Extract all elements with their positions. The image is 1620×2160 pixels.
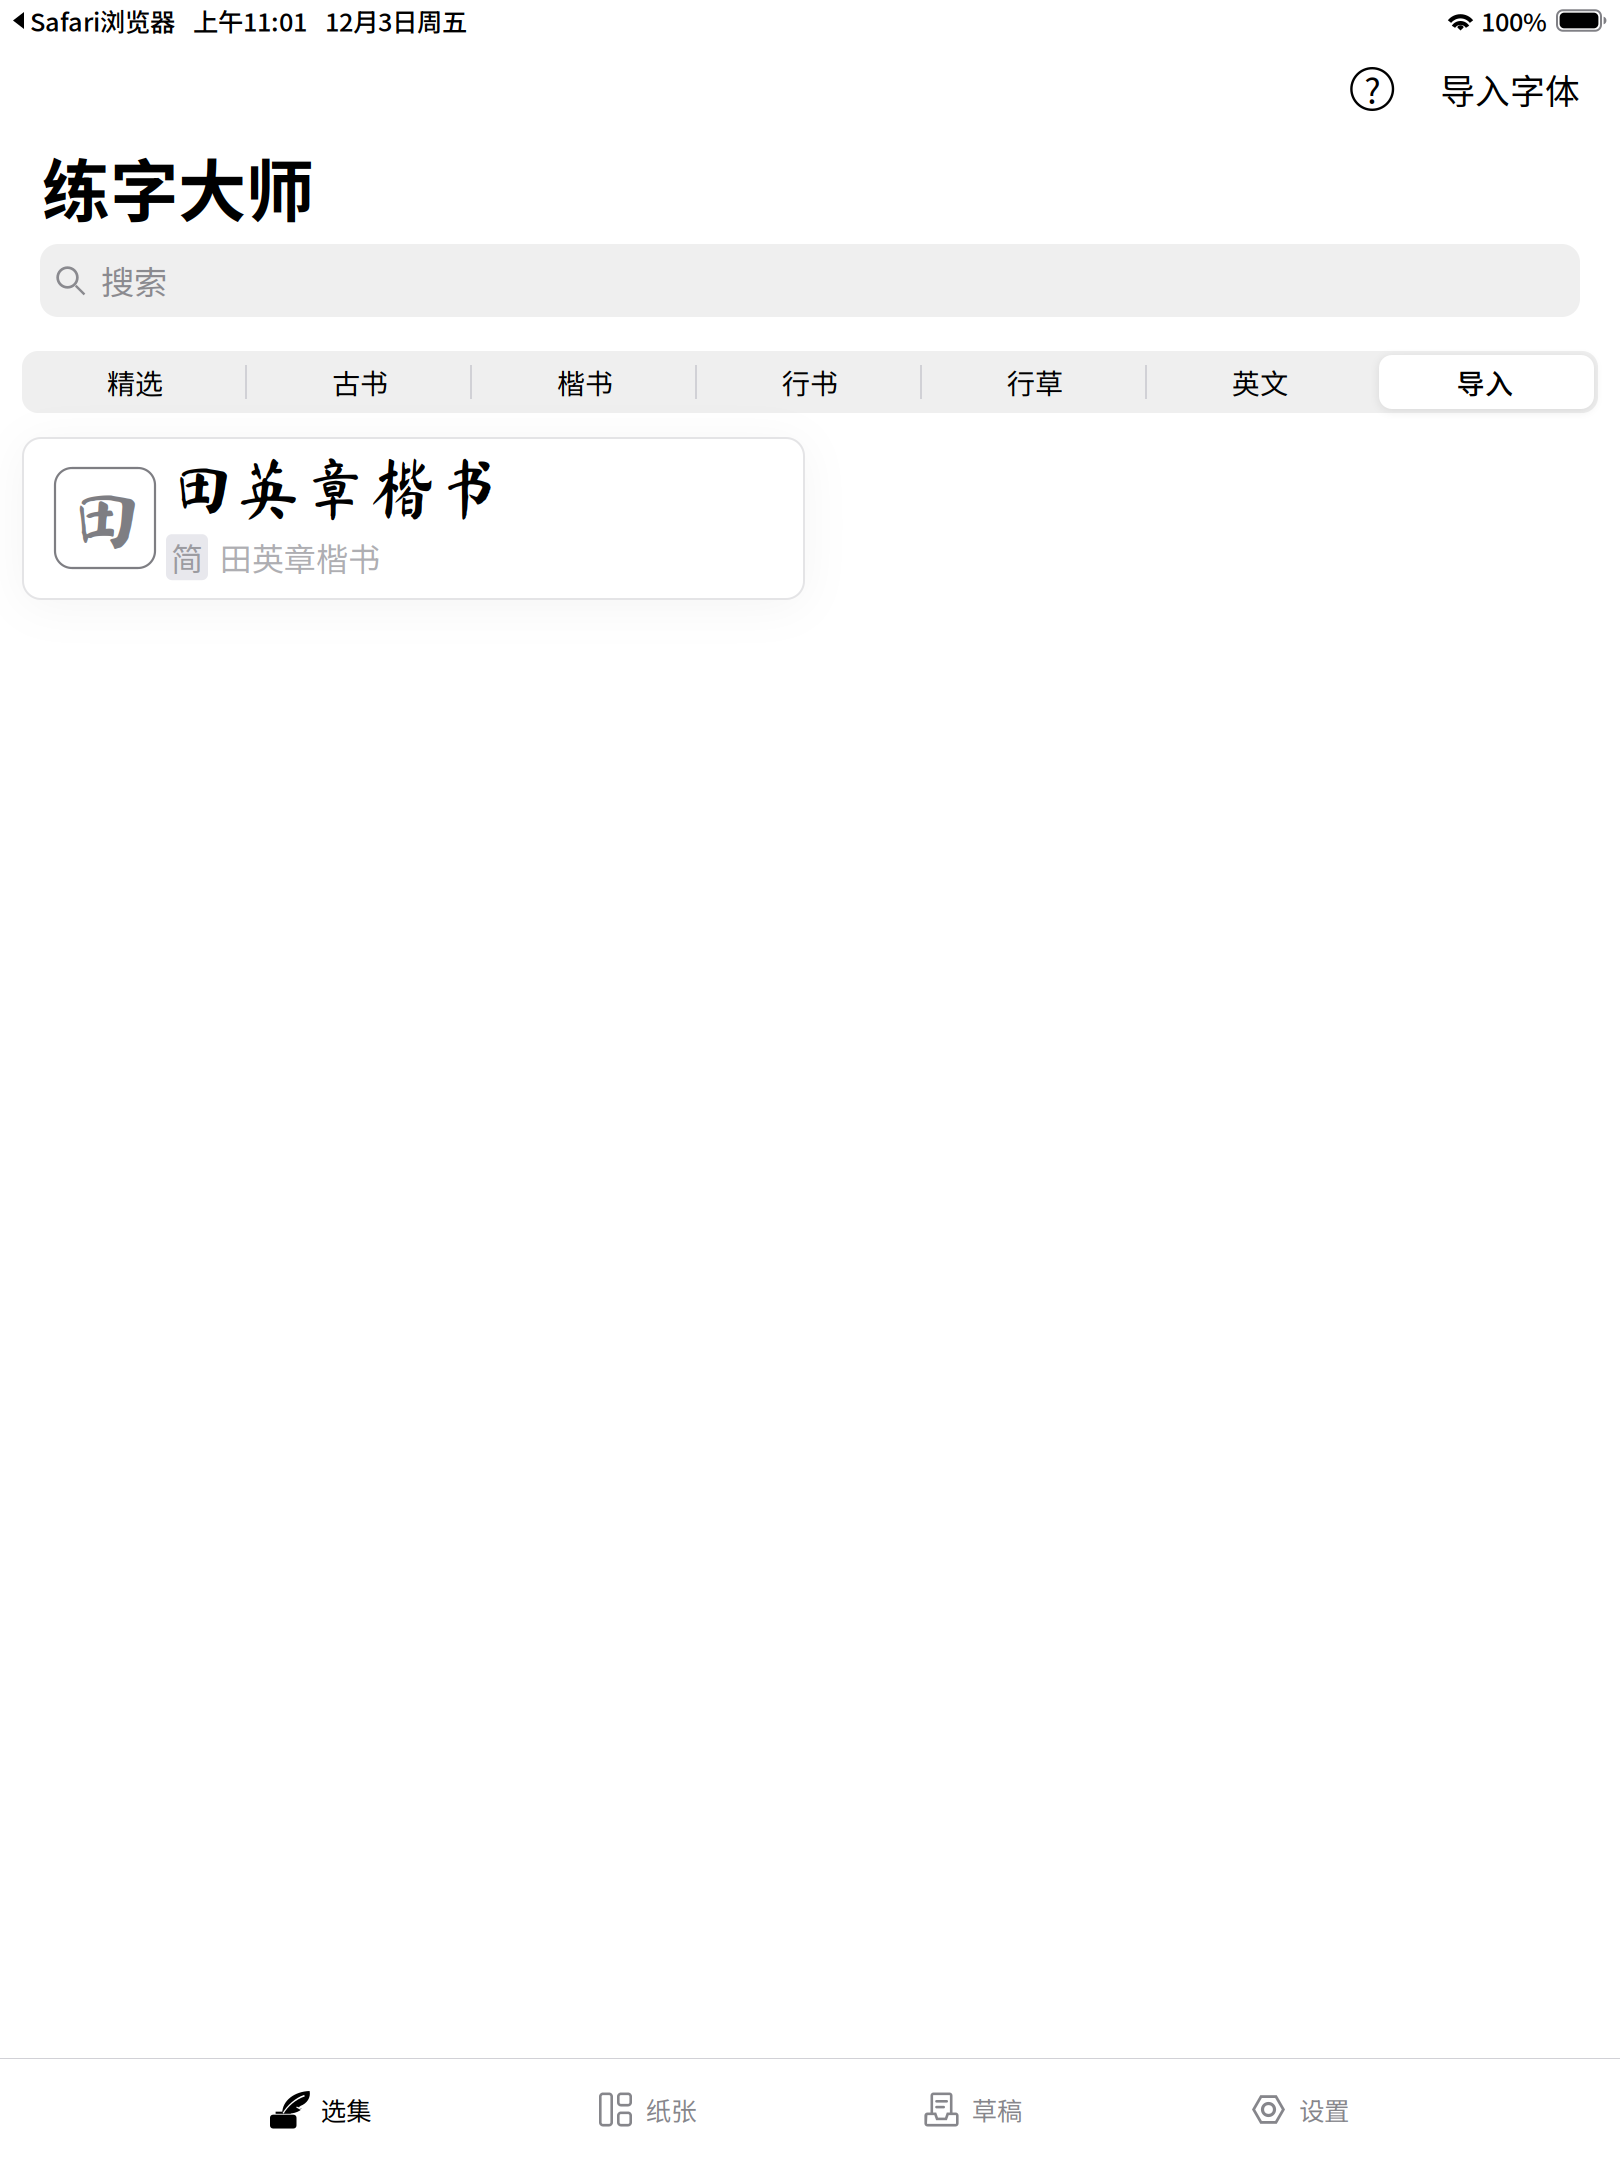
button[interactable]: 行草 (922, 351, 1147, 413)
staticText: Safari浏览器 上午11:01 12月3日周五 (24, 2, 467, 39)
staticText: 纸张 (646, 2091, 696, 2128)
staticText: 行草 (1007, 362, 1063, 402)
staticText: 古书 (332, 362, 388, 402)
staticText: 练字大师 (42, 137, 314, 236)
staticText: 选集 (321, 2091, 371, 2128)
staticText: 搜索 (101, 256, 167, 305)
button[interactable]: 帮助 (1345, 62, 1399, 116)
staticText: 设置 (1299, 2091, 1349, 2128)
button[interactable]: 搜索 (40, 244, 1580, 317)
button[interactable]: 导入 (1372, 351, 1597, 413)
staticText: 英文 (1232, 362, 1288, 402)
button[interactable]: 纸张 (599, 2060, 811, 2159)
staticText: 楷书 (557, 362, 613, 402)
button[interactable]: 古书 (247, 351, 472, 413)
staticText: 田英章楷书 (220, 534, 380, 580)
staticText: 导入字体 (1440, 64, 1580, 114)
button[interactable]: 行书 (697, 351, 922, 413)
button[interactable]: 精选 (22, 351, 247, 413)
staticText: ? (1364, 64, 1380, 114)
button[interactable]: 草稿 (924, 2060, 1137, 2159)
staticText: 草稿 (972, 2091, 1022, 2128)
staticText: 田 (65, 479, 144, 557)
button[interactable]: 设置 (1252, 2060, 1465, 2159)
staticText: 导入 (1457, 362, 1513, 402)
staticText: 田英章楷书 (168, 454, 503, 521)
staticText: 100% (1481, 2, 1547, 39)
staticText: 精选 (107, 362, 163, 402)
button[interactable]: 楷书 (472, 351, 697, 413)
button[interactable]: 英文 (1147, 351, 1372, 413)
button[interactable]: 导入字体 (1430, 56, 1590, 122)
staticText: 简 (171, 534, 203, 580)
button[interactable]: 选集 (270, 2059, 487, 2159)
button[interactable]: 田 (23, 438, 804, 599)
staticText: 行书 (782, 362, 838, 402)
